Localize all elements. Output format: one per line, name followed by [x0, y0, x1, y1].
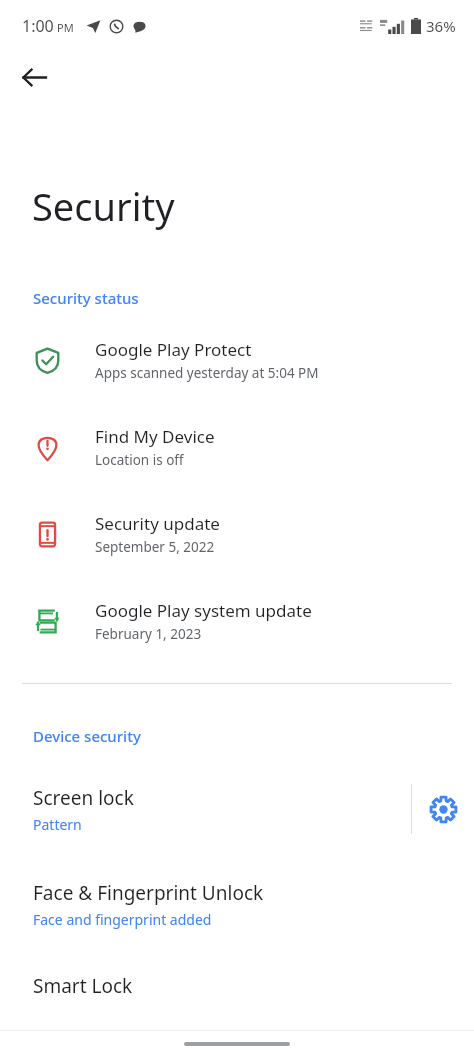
staticText: Apps scanned yesterday at 5:04 PM: [95, 364, 319, 382]
staticText: September 5, 2022: [95, 538, 215, 556]
staticText: Google Play system update: [95, 599, 312, 622]
button[interactable]: Google Play system update: [0, 599, 474, 643]
staticText: Find My Device: [95, 425, 215, 448]
staticText: Face and fingerprint added: [33, 910, 212, 929]
staticText: Pattern: [33, 815, 82, 834]
staticText: 1:00: [22, 15, 54, 37]
staticText: Security: [32, 180, 175, 232]
button[interactable]: Screen lock: [0, 781, 411, 838]
button[interactable]: Google Play Protect: [0, 338, 474, 382]
staticText: Device security: [33, 726, 141, 746]
staticText: Smart Lock: [33, 973, 133, 999]
button[interactable]: Security update: [0, 512, 474, 556]
staticText: 36%: [426, 16, 456, 36]
staticText: Face & Fingerprint Unlock: [33, 880, 264, 906]
button[interactable]: Find My Device: [0, 425, 474, 469]
button[interactable]: Back: [10, 53, 58, 101]
button[interactable]: Smart Lock: [0, 973, 474, 1003]
button[interactable]: Screen lock settings: [412, 778, 474, 840]
staticText: PM: [57, 20, 74, 35]
staticText: Security status: [33, 288, 139, 308]
staticText: Location is off: [95, 451, 184, 469]
staticText: Google Play Protect: [95, 338, 252, 361]
staticText: February 1, 2023: [95, 625, 202, 643]
button[interactable]: Face & Fingerprint Unlock: [0, 876, 474, 933]
staticText: Security update: [95, 512, 220, 535]
staticText: Screen lock: [33, 785, 134, 811]
